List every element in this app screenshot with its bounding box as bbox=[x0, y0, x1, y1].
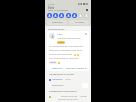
staticText: 14:27 bbox=[57, 33, 63, 36]
staticText: Promo bbox=[58, 41, 64, 44]
staticText: Catégories bbox=[52, 78, 63, 81]
button[interactable]: Action 7 bbox=[84, 13, 89, 18]
staticText: Notifications et alertes bbox=[49, 73, 74, 76]
staticText: Importance bbox=[52, 84, 64, 87]
button[interactable]: Marquer comme lu bbox=[66, 66, 87, 70]
button[interactable]: Catégories bbox=[49, 78, 87, 81]
button[interactable]: Action 3 bbox=[59, 13, 64, 18]
staticText: Les promotions de la semaine sont bbox=[49, 45, 84, 48]
staticText: Répondre bbox=[52, 67, 63, 70]
button[interactable]: Offres bbox=[50, 61, 56, 64]
staticText: espace client personnel bbox=[49, 53, 73, 56]
button[interactable]: Action 5 bbox=[72, 13, 77, 18]
staticText: 14:02 bbox=[48, 2, 55, 5]
staticText: Une offre spéciale pour vous bbox=[57, 37, 85, 40]
staticText: Archiver bbox=[75, 21, 84, 24]
staticText: et le restent jusqu'à dimanche. bbox=[49, 57, 80, 60]
button[interactable]: Action 1 bbox=[47, 13, 52, 18]
staticText: 12:40 bbox=[65, 78, 71, 81]
staticText: Alertes bbox=[80, 95, 87, 98]
button[interactable]: Action 2 bbox=[53, 13, 58, 18]
staticText: Offres bbox=[50, 61, 56, 64]
staticText: Dernière mise à jour bbox=[58, 98, 79, 101]
button[interactable]: Action 6 bbox=[78, 13, 83, 18]
staticText: Boîte bbox=[48, 6, 55, 9]
staticText: Notifications silencieuses bbox=[49, 90, 77, 93]
staticText: désormais disponibles dans votre bbox=[49, 49, 82, 52]
staticText: Tous, 24 messages bbox=[48, 9, 69, 12]
button[interactable]: Gestion avancée bbox=[49, 95, 87, 98]
button[interactable]: Importance bbox=[52, 83, 88, 88]
button[interactable]: Répondre bbox=[49, 66, 66, 70]
button[interactable]: Archiver bbox=[69, 20, 89, 25]
button[interactable]: 14:27 bbox=[47, 31, 89, 71]
staticText: Gestion avancée bbox=[61, 95, 78, 98]
staticText: Répondre bbox=[52, 21, 63, 24]
staticText: Conversations bbox=[48, 27, 65, 30]
staticText: Marquer comme lu bbox=[66, 67, 87, 70]
button[interactable]: Action 4 bbox=[66, 13, 71, 18]
button[interactable]: Répondre bbox=[47, 20, 67, 25]
